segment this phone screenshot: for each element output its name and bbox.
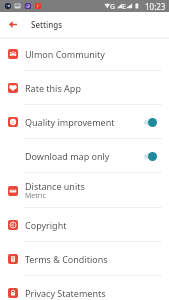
staticText: Quality improvement bbox=[25, 116, 115, 128]
staticText: Download map only bbox=[25, 150, 110, 162]
staticText: Privacy Statements bbox=[25, 287, 106, 299]
staticText: Copyright bbox=[25, 219, 67, 231]
button[interactable]: Toggle Download map only bbox=[137, 139, 163, 173]
staticText: E bbox=[122, 2, 126, 12]
button[interactable]: Download map only bbox=[0, 139, 169, 173]
button[interactable]: Copyright bbox=[0, 208, 169, 242]
button[interactable]: Rate this App bbox=[0, 71, 169, 105]
staticText: G bbox=[110, 2, 116, 12]
staticText: Metric bbox=[25, 191, 46, 201]
staticText: Rate this App bbox=[25, 82, 81, 94]
staticText: Settings bbox=[31, 19, 63, 30]
button[interactable]: Distance units bbox=[0, 174, 169, 208]
button[interactable]: Privacy Statements bbox=[0, 276, 169, 300]
button[interactable]: Terms & Conditions bbox=[0, 242, 169, 276]
staticText: Terms & Conditions bbox=[25, 253, 108, 265]
staticText: Ulmon Community bbox=[25, 48, 105, 60]
staticText: 10:23 bbox=[145, 1, 166, 12]
button[interactable]: Toggle Quality improvement bbox=[137, 105, 163, 139]
staticText: Distance units bbox=[25, 180, 85, 192]
button[interactable]: Back bbox=[0, 12, 26, 37]
button[interactable]: Ulmon Community bbox=[0, 37, 169, 71]
button[interactable]: Quality improvement bbox=[0, 105, 169, 139]
